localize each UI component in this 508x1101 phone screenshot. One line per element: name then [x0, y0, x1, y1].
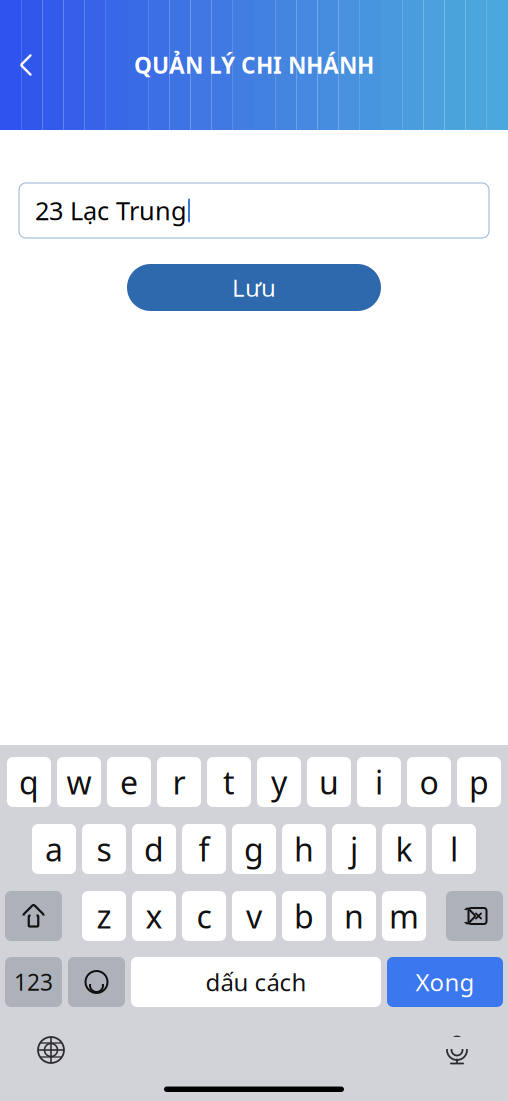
- staticText: t: [223, 761, 235, 803]
- staticText: g: [244, 828, 264, 870]
- staticText: i: [375, 761, 383, 803]
- button[interactable]: Change keyboard: [24, 1027, 78, 1073]
- staticText: Xong: [415, 966, 474, 998]
- button[interactable]: u: [307, 757, 351, 807]
- staticText: n: [344, 895, 364, 937]
- button[interactable]: f: [182, 824, 226, 874]
- button[interactable]: 123: [5, 957, 62, 1007]
- button[interactable]: i: [357, 757, 401, 807]
- button[interactable]: j: [332, 824, 376, 874]
- button[interactable]: d: [132, 824, 176, 874]
- staticText: e: [120, 761, 138, 803]
- button[interactable]: x: [132, 891, 176, 941]
- staticText: r: [172, 761, 185, 803]
- button[interactable]: h: [282, 824, 326, 874]
- button[interactable]: Shift: [5, 891, 62, 941]
- button[interactable]: m: [382, 891, 426, 941]
- staticText: p: [469, 761, 489, 803]
- staticText: m: [389, 895, 419, 937]
- button[interactable]: g: [232, 824, 276, 874]
- staticText: a: [45, 828, 63, 870]
- staticText: f: [198, 828, 209, 870]
- button[interactable]: e: [107, 757, 151, 807]
- staticText: b: [294, 895, 314, 937]
- button[interactable]: v: [232, 891, 276, 941]
- button[interactable]: a: [32, 824, 76, 874]
- staticText: x: [145, 895, 162, 937]
- button[interactable]: n: [332, 891, 376, 941]
- button[interactable]: o: [407, 757, 451, 807]
- button[interactable]: b: [282, 891, 326, 941]
- button[interactable]: t: [207, 757, 251, 807]
- staticText: u: [319, 761, 339, 803]
- button[interactable]: Delete: [446, 891, 503, 941]
- staticText: 123: [14, 967, 53, 997]
- button[interactable]: w: [57, 757, 101, 807]
- staticText: v: [246, 895, 262, 937]
- staticText: h: [294, 828, 314, 870]
- button[interactable]: l: [432, 824, 476, 874]
- button[interactable]: Back: [0, 37, 52, 93]
- button[interactable]: k: [382, 824, 426, 874]
- staticText: w: [66, 761, 91, 803]
- staticText: s: [96, 828, 111, 870]
- staticText: z: [96, 895, 111, 937]
- staticText: o: [419, 761, 438, 803]
- staticText: 23 Lạc Trung: [35, 194, 187, 227]
- button[interactable]: r: [157, 757, 201, 807]
- button[interactable]: Lưu: [127, 264, 381, 311]
- staticText: q: [19, 761, 39, 803]
- button[interactable]: z: [82, 891, 126, 941]
- button[interactable]: y: [257, 757, 301, 807]
- staticText: Lưu: [232, 272, 276, 303]
- staticText: QUẢN LÝ CHI NHÁNH: [134, 50, 374, 80]
- button[interactable]: Dictation: [430, 1027, 484, 1073]
- staticText: dấu cách: [205, 966, 306, 998]
- staticText: j: [350, 828, 358, 870]
- staticText: l: [450, 828, 458, 870]
- staticText: c: [196, 895, 211, 937]
- button[interactable]: dấu cách: [131, 957, 381, 1007]
- button[interactable]: p: [457, 757, 501, 807]
- staticText: d: [144, 828, 164, 870]
- staticText: y: [271, 761, 287, 803]
- button[interactable]: c: [182, 891, 226, 941]
- button[interactable]: Xong: [387, 957, 503, 1007]
- button[interactable]: s: [82, 824, 126, 874]
- button[interactable]: Emoji: [68, 957, 125, 1007]
- button[interactable]: q: [7, 757, 51, 807]
- staticText: k: [395, 828, 412, 870]
